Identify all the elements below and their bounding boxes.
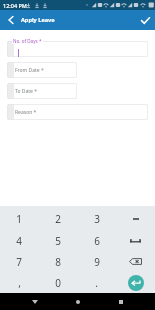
other: Enter <box>128 275 144 291</box>
staticText: 6 <box>94 234 100 248</box>
button[interactable]: Recents <box>112 293 129 310</box>
staticText: 9 <box>94 255 100 269</box>
button[interactable]: Back <box>26 293 43 310</box>
button[interactable]: 1 <box>0 208 38 230</box>
staticText: 4 <box>16 234 22 248</box>
button[interactable]: . <box>77 272 116 293</box>
staticText: Apply Leave <box>21 16 55 24</box>
button[interactable]: , <box>0 272 38 293</box>
staticText: . <box>95 276 98 290</box>
other: Space <box>130 238 141 244</box>
button[interactable]: 2 <box>38 208 77 230</box>
button[interactable]: 3 <box>77 208 116 230</box>
button[interactable] <box>7 41 148 57</box>
button[interactable]: Backspace <box>116 251 155 272</box>
button[interactable]: Home <box>69 293 86 310</box>
staticText: 1 <box>16 212 22 226</box>
button[interactable]: Reason * <box>7 104 148 120</box>
staticText: 8 <box>55 255 61 269</box>
staticText: 0 <box>55 276 61 290</box>
staticText: Reason * <box>15 109 37 116</box>
button[interactable]: Back <box>0 10 22 30</box>
button[interactable]: To Date * <box>7 83 77 99</box>
button[interactable]: 9 <box>77 251 116 272</box>
staticText: 5 <box>55 234 61 248</box>
staticText: From Date * <box>15 67 44 74</box>
button[interactable]: 4 <box>0 230 38 251</box>
staticText: , <box>18 276 21 290</box>
other: Dash <box>133 216 139 222</box>
staticText: 2 <box>55 212 61 226</box>
button[interactable]: Save <box>136 11 155 30</box>
button[interactable]: 0 <box>38 272 77 293</box>
button[interactable]: Dash <box>116 208 155 230</box>
button[interactable]: 5 <box>38 230 77 251</box>
staticText: To Date * <box>15 88 37 95</box>
other: Backspace <box>129 257 142 266</box>
staticText: 3 <box>94 212 100 226</box>
button[interactable]: 6 <box>77 230 116 251</box>
button[interactable]: Space <box>116 230 155 251</box>
button[interactable]: From Date * <box>7 62 77 78</box>
button[interactable]: Enter <box>116 272 155 293</box>
button[interactable]: 7 <box>0 251 38 272</box>
staticText: 7 <box>16 255 22 269</box>
staticText: No. of Days * <box>13 38 42 44</box>
staticText: 12:04 PM <box>3 2 27 9</box>
button[interactable]: 8 <box>38 251 77 272</box>
